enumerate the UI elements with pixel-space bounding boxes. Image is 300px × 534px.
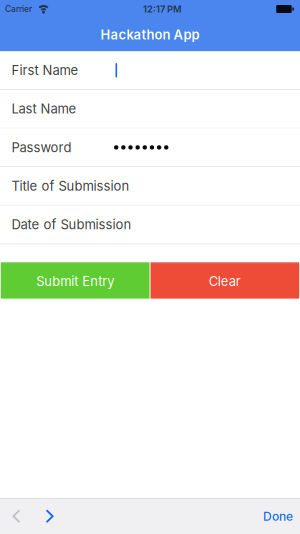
staticText: Clear <box>209 273 241 289</box>
staticText: Submit Entry <box>36 273 114 289</box>
button[interactable]: Title of Submission <box>0 167 300 206</box>
button[interactable]: Submit Entry <box>1 262 149 299</box>
staticText: Title of Submission <box>11 178 129 194</box>
staticText: Carrier <box>5 4 32 14</box>
button[interactable]: Previous field <box>12 509 21 524</box>
button[interactable]: Clear <box>150 262 299 299</box>
staticText: Password <box>11 139 71 155</box>
button[interactable]: First Name <box>0 51 300 90</box>
button[interactable]: Next field <box>45 509 54 524</box>
staticText: Date of Submission <box>11 217 131 232</box>
staticText: Done <box>263 509 293 524</box>
staticText: Hackathon App <box>100 27 199 43</box>
staticText: 12:17 PM <box>143 3 182 15</box>
button[interactable]: Date of Submission <box>0 206 300 244</box>
staticText: First Name <box>11 62 78 78</box>
button[interactable]: Last Name <box>0 90 300 129</box>
button[interactable]: Password <box>0 128 300 167</box>
staticText: Last Name <box>11 101 76 117</box>
button[interactable]: Done <box>263 509 293 524</box>
